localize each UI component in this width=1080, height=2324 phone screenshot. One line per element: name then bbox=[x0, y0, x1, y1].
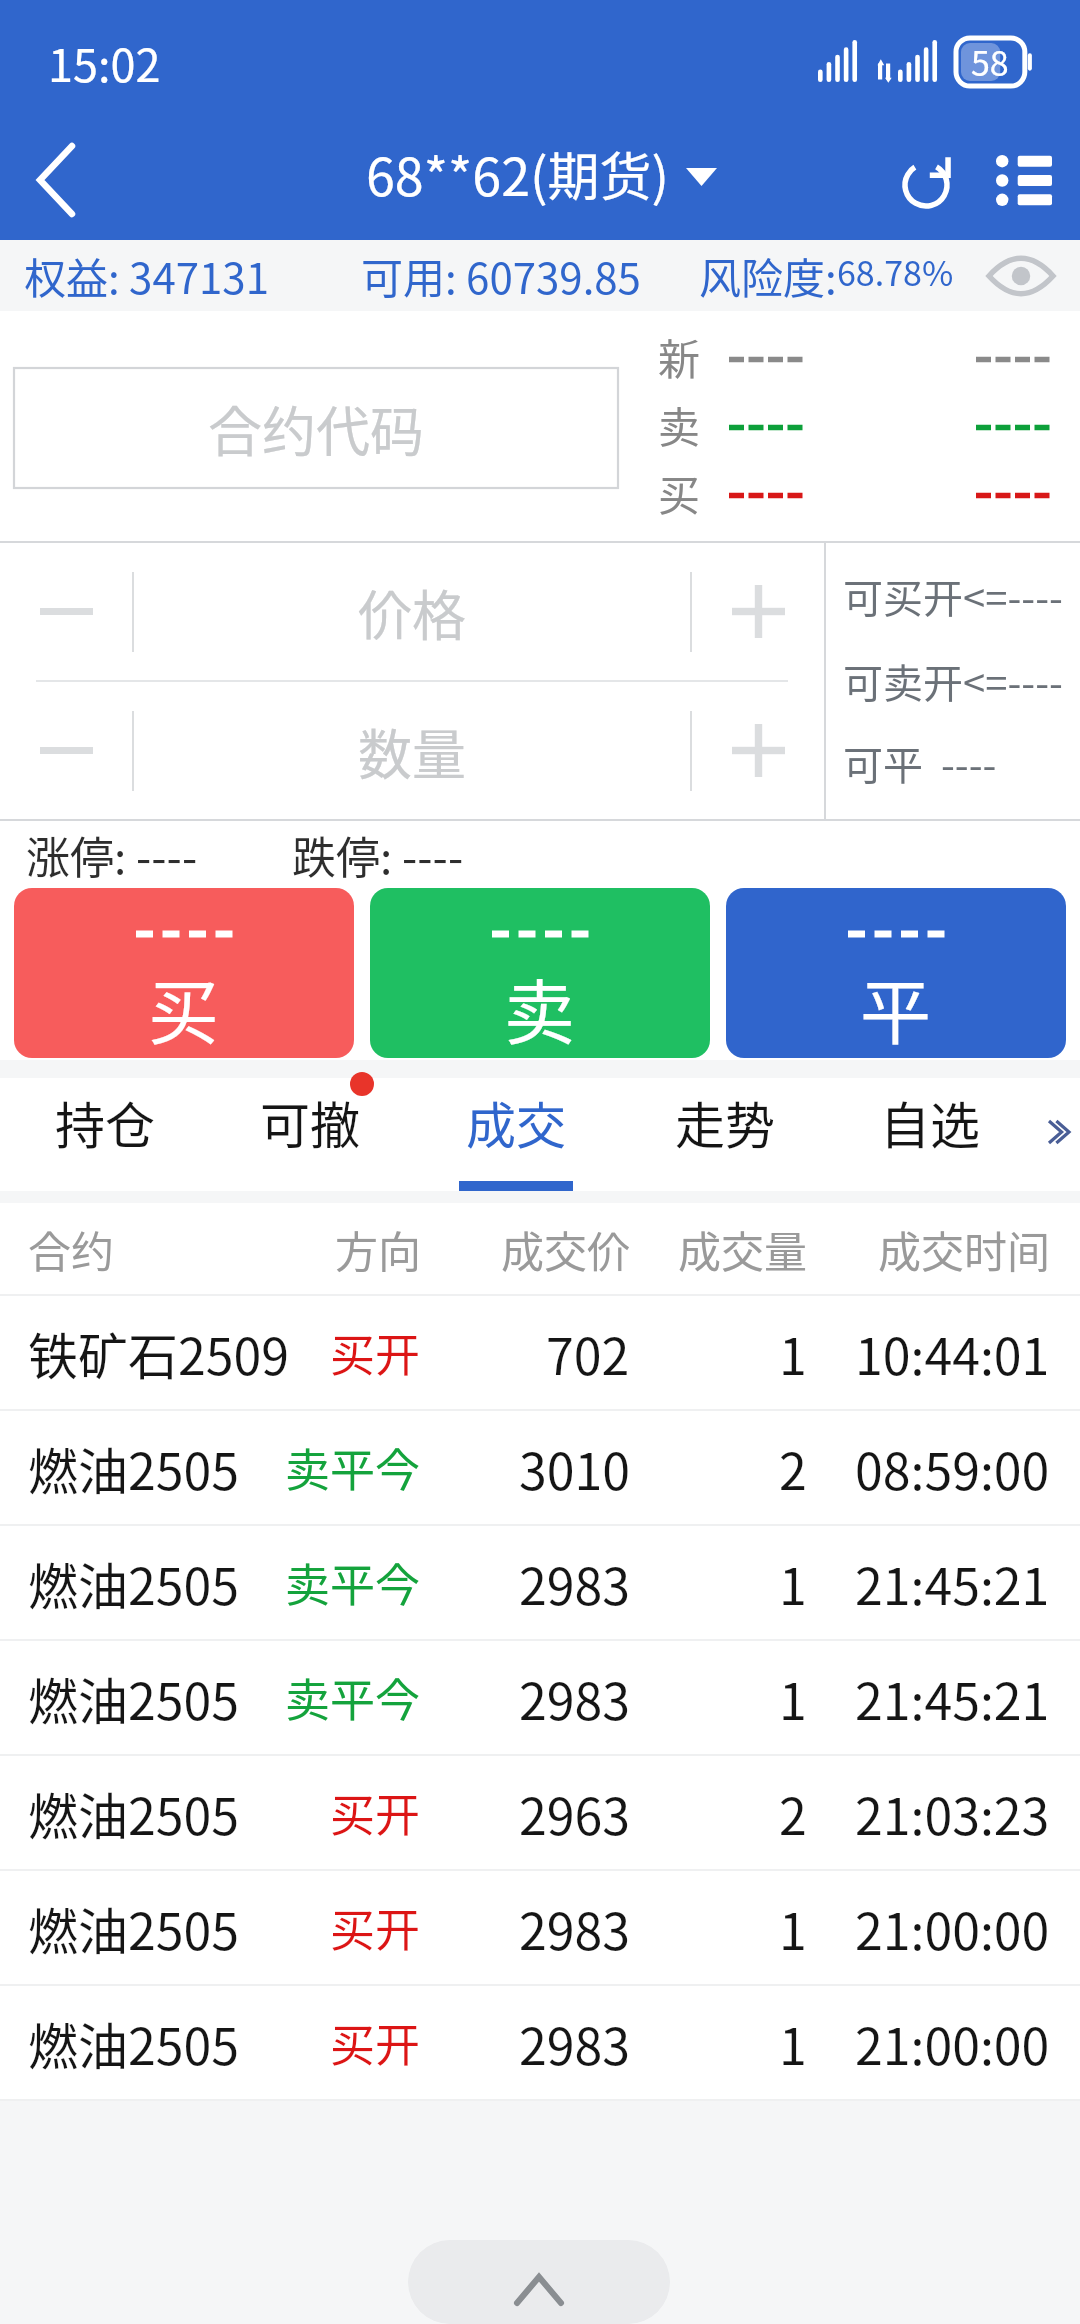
button[interactable]: 燃油2505 bbox=[0, 1411, 1080, 1524]
staticText: 21:45:21 bbox=[855, 1662, 1050, 1734]
staticText: 1 bbox=[779, 2007, 807, 2079]
staticText: 15:02 bbox=[48, 30, 161, 95]
staticText: 1 bbox=[779, 1892, 807, 1964]
staticText: 自选 bbox=[880, 1086, 980, 1158]
button[interactable]: Decrease 价格 bbox=[0, 543, 132, 680]
button[interactable]: Scroll to top bbox=[408, 2240, 670, 2324]
button[interactable]: Decrease 数量 bbox=[0, 682, 132, 819]
staticText: 燃油2505 bbox=[28, 2007, 239, 2079]
staticText: 2983 bbox=[519, 1547, 630, 1619]
staticText: 成交 bbox=[466, 1086, 566, 1158]
staticText: 可撤 bbox=[260, 1086, 360, 1158]
staticText: 2963 bbox=[519, 1777, 630, 1849]
button[interactable]: 成交 bbox=[426, 1078, 606, 1191]
button[interactable]: 燃油2505 bbox=[0, 1641, 1080, 1754]
button[interactable]: 买 bbox=[14, 888, 354, 1058]
staticText: 21:03:23 bbox=[855, 1777, 1050, 1849]
button[interactable]: 平 bbox=[726, 888, 1066, 1058]
staticText: 可用: 60739.85 bbox=[361, 245, 641, 306]
staticText: 3010 bbox=[519, 1432, 630, 1504]
staticText: 燃油2505 bbox=[28, 1662, 239, 1734]
staticText: 跌停: ---- bbox=[292, 823, 464, 887]
staticText: 卖平今 bbox=[285, 1435, 421, 1500]
button[interactable]: Toggle balance visibility bbox=[986, 241, 1056, 311]
staticText: 2983 bbox=[519, 2007, 630, 2079]
staticText: 21:00:00 bbox=[855, 2007, 1050, 2079]
staticText: 燃油2505 bbox=[28, 1777, 239, 1849]
staticText: 68**62(期货) bbox=[366, 136, 670, 211]
button[interactable]: Increase 价格 bbox=[692, 543, 824, 680]
button[interactable]: Increase 数量 bbox=[692, 682, 824, 819]
staticText: 卖平今 bbox=[285, 1665, 421, 1730]
staticText: 平 bbox=[860, 956, 932, 1058]
button[interactable]: 合约代码 bbox=[14, 368, 618, 488]
button[interactable]: 数量 bbox=[134, 682, 690, 819]
button[interactable]: 自选 bbox=[840, 1078, 1020, 1191]
button[interactable]: 燃油2505 bbox=[0, 1756, 1080, 1869]
staticText: 数量 bbox=[358, 712, 466, 790]
staticText: 买开 bbox=[330, 2010, 421, 2075]
staticText: 买开 bbox=[330, 1895, 421, 1960]
staticText: 权益: 347131 bbox=[24, 245, 269, 306]
staticText: 买开 bbox=[330, 1320, 421, 1385]
staticText: 持仓 bbox=[55, 1086, 155, 1158]
staticText: 08:59:00 bbox=[855, 1432, 1050, 1504]
button[interactable]: 可撤 bbox=[220, 1078, 400, 1191]
staticText: 可卖开<=---- bbox=[843, 652, 1063, 710]
staticText: 成交价 bbox=[501, 1218, 630, 1280]
staticText: 燃油2505 bbox=[28, 1892, 239, 1964]
button[interactable]: 燃油2505 bbox=[0, 1986, 1080, 2099]
staticText: 1 bbox=[779, 1317, 807, 1389]
button[interactable]: 持仓 bbox=[15, 1078, 195, 1191]
staticText: 21:00:00 bbox=[855, 1892, 1050, 1964]
button[interactable]: 铁矿石2509 bbox=[0, 1296, 1080, 1409]
button[interactable]: Refresh bbox=[888, 140, 968, 220]
staticText: 成交量 bbox=[678, 1218, 807, 1280]
staticText: 2983 bbox=[519, 1662, 630, 1734]
staticText: 涨停: ---- bbox=[26, 823, 198, 887]
staticText: 成交时间 bbox=[878, 1218, 1050, 1280]
staticText: 燃油2505 bbox=[28, 1547, 239, 1619]
staticText: 可平 ---- bbox=[843, 734, 997, 792]
staticText: 68.78% bbox=[837, 247, 954, 296]
staticText: 可买开<=---- bbox=[843, 567, 1063, 625]
staticText: 卖平今 bbox=[285, 1550, 421, 1615]
button[interactable]: Back bbox=[0, 120, 110, 240]
staticText: 买开 bbox=[330, 1780, 421, 1845]
staticText: 1 bbox=[779, 1547, 807, 1619]
staticText: 2983 bbox=[519, 1892, 630, 1964]
staticText: 2 bbox=[779, 1432, 807, 1504]
button[interactable]: 燃油2505 bbox=[0, 1526, 1080, 1639]
button[interactable]: 燃油2505 bbox=[0, 1871, 1080, 1984]
staticText: 10:44:01 bbox=[855, 1317, 1050, 1389]
staticText: 买 bbox=[658, 462, 701, 523]
button[interactable]: 走势 bbox=[635, 1078, 815, 1191]
staticText: 燃油2505 bbox=[28, 1432, 239, 1504]
button[interactable]: 68**62(期货) bbox=[366, 136, 717, 211]
staticText: 卖 bbox=[504, 956, 576, 1058]
staticText: 走势 bbox=[675, 1086, 775, 1158]
button[interactable]: Order list bbox=[984, 140, 1064, 220]
staticText: 21:45:21 bbox=[855, 1547, 1050, 1619]
button[interactable]: More tabs bbox=[1037, 1100, 1080, 1164]
staticText: 方向 bbox=[335, 1218, 421, 1280]
staticText: 风险度: bbox=[699, 245, 837, 306]
staticText: 买 bbox=[148, 956, 220, 1058]
staticText: 价格 bbox=[358, 573, 466, 651]
staticText: 合约 bbox=[28, 1218, 114, 1280]
staticText: 702 bbox=[546, 1317, 630, 1389]
staticText: 铁矿石2509 bbox=[28, 1317, 289, 1389]
button[interactable]: 卖 bbox=[370, 888, 710, 1058]
staticText: 1 bbox=[779, 1662, 807, 1734]
staticText: 2 bbox=[779, 1777, 807, 1849]
staticText: 卖 bbox=[658, 394, 701, 455]
staticText: 合约代码 bbox=[208, 389, 424, 467]
staticText: 58 bbox=[971, 37, 1009, 86]
staticText: 新 bbox=[658, 326, 701, 387]
button[interactable]: 价格 bbox=[134, 543, 690, 680]
